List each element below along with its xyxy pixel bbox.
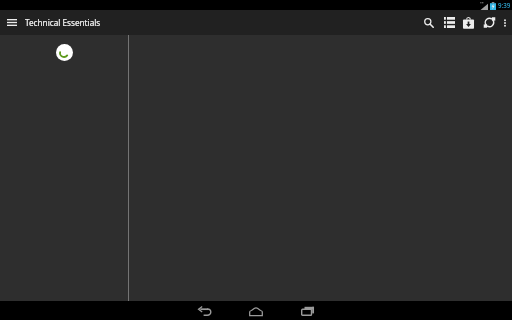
- button[interactable]: Home: [248, 301, 264, 320]
- staticText: 9:39: [498, 1, 511, 9]
- button[interactable]: Back: [197, 301, 213, 320]
- button[interactable]: Search: [419, 10, 439, 35]
- button[interactable]: List view: [439, 10, 459, 35]
- button[interactable]: More options: [495, 10, 512, 35]
- button[interactable]: Open navigation drawer: [0, 10, 23, 35]
- staticText: Technical Essentials: [25, 17, 101, 28]
- button[interactable]: Store: [458, 10, 478, 35]
- button[interactable]: Recent apps: [300, 301, 316, 320]
- button[interactable]: Refresh: [479, 10, 499, 35]
